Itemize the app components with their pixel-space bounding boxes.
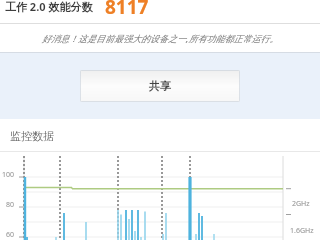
staticText: 100 xyxy=(2,170,15,180)
staticText: 8117 xyxy=(105,0,149,18)
staticText: 1.6GHz xyxy=(290,226,314,236)
staticText: 80 xyxy=(6,200,15,210)
staticText: 好消息！这是目前最强大的设备之一,所有功能都正常运行。 xyxy=(42,32,279,44)
staticText: 共享 xyxy=(149,79,171,93)
button[interactable]: 共享 xyxy=(80,70,240,102)
staticText: 监控数据 xyxy=(10,129,54,143)
staticText: 60 xyxy=(6,230,15,240)
staticText: 工作 2.0 效能分数 xyxy=(5,0,93,14)
staticText: 2GHz xyxy=(292,199,310,209)
